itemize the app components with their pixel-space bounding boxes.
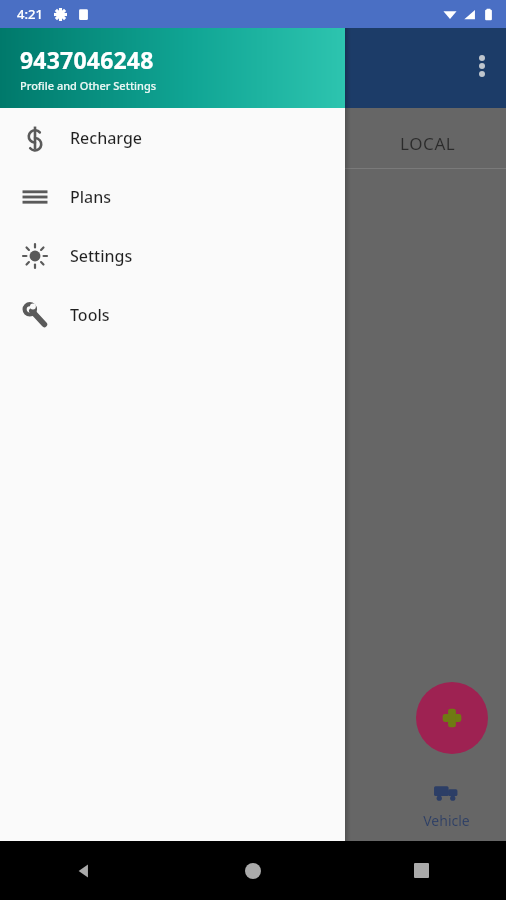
button[interactable]: Plans	[0, 167, 345, 226]
staticText: Profile and Other Settings	[20, 78, 157, 93]
button[interactable]: LOCAL	[350, 118, 506, 168]
staticText: Plans	[70, 186, 112, 208]
staticText: Vehicle	[423, 811, 470, 830]
staticText: Tools	[70, 304, 110, 326]
button[interactable]: Home	[168, 841, 337, 900]
staticText: Recharge	[70, 127, 143, 149]
button[interactable]: More options	[462, 44, 502, 84]
button[interactable]: Add	[416, 682, 488, 754]
button[interactable]: Recent apps	[337, 841, 506, 900]
button[interactable]: Vehicle	[400, 780, 492, 830]
button[interactable]: Settings	[0, 226, 345, 285]
button[interactable]: Back	[0, 841, 168, 900]
staticText: LOCAL	[400, 132, 456, 155]
staticText: Settings	[70, 245, 133, 267]
staticText: 4:21	[17, 5, 43, 23]
button[interactable]: Tools	[0, 285, 345, 344]
staticText: 9437046248	[20, 44, 154, 75]
button[interactable]: Recharge	[0, 108, 345, 167]
